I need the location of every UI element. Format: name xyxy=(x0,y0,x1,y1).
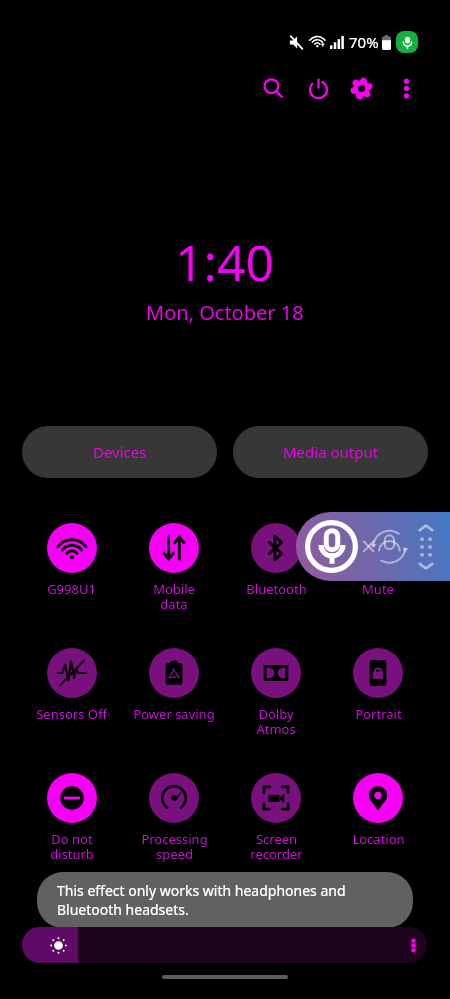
staticText: Mon, October 18 xyxy=(146,299,304,326)
button[interactable]: Stop listening xyxy=(361,524,405,568)
button[interactable]: Location xyxy=(327,773,429,848)
button[interactable]: Do not disturb xyxy=(20,773,123,863)
staticText: Mobile data xyxy=(153,580,195,613)
staticText: Screen recorder xyxy=(250,830,303,863)
button[interactable]: Devices xyxy=(22,426,217,478)
button[interactable]: Voice access microphone xyxy=(305,520,358,573)
staticText: Portrait xyxy=(355,705,402,723)
button[interactable]: Portrait xyxy=(327,648,429,723)
staticText: Media output xyxy=(283,442,379,462)
staticText: Processing speed xyxy=(141,830,208,863)
button[interactable]: Search xyxy=(255,70,292,107)
staticText: Mute xyxy=(362,580,394,598)
button[interactable]: Mobile data xyxy=(123,523,225,613)
button[interactable]: Power saving xyxy=(123,648,225,723)
staticText: Power saving xyxy=(133,705,215,723)
staticText: Do not disturb xyxy=(50,830,94,863)
staticText: This effect only works with headphones a… xyxy=(57,881,391,919)
staticText: Devices xyxy=(93,442,147,462)
staticText: Bluetooth xyxy=(246,580,307,598)
button[interactable]: Processing speed xyxy=(123,773,225,863)
staticText: 1:40 xyxy=(175,228,275,296)
button[interactable] xyxy=(22,927,427,963)
button[interactable]: Mute xyxy=(327,523,429,598)
button[interactable]: Recording indicator xyxy=(396,31,418,53)
button[interactable]: Move voice access bar xyxy=(412,523,440,571)
staticText: Dolby Atmos xyxy=(256,705,296,738)
button[interactable]: Sensors Off xyxy=(20,648,123,723)
staticText: Location xyxy=(352,830,405,848)
button[interactable]: Settings xyxy=(343,70,380,107)
staticText: 70% xyxy=(349,32,379,52)
button[interactable]: G998U1 xyxy=(20,523,123,598)
staticText: Sensors Off xyxy=(36,705,107,723)
button[interactable]: Screen recorder xyxy=(225,773,327,863)
button[interactable]: Power off xyxy=(300,70,337,107)
button[interactable]: Dolby Atmos xyxy=(225,648,327,738)
button[interactable]: Bluetooth xyxy=(225,523,327,598)
button[interactable]: Media output xyxy=(233,426,428,478)
button[interactable]: More options xyxy=(388,70,425,107)
staticText: G998U1 xyxy=(47,580,96,598)
